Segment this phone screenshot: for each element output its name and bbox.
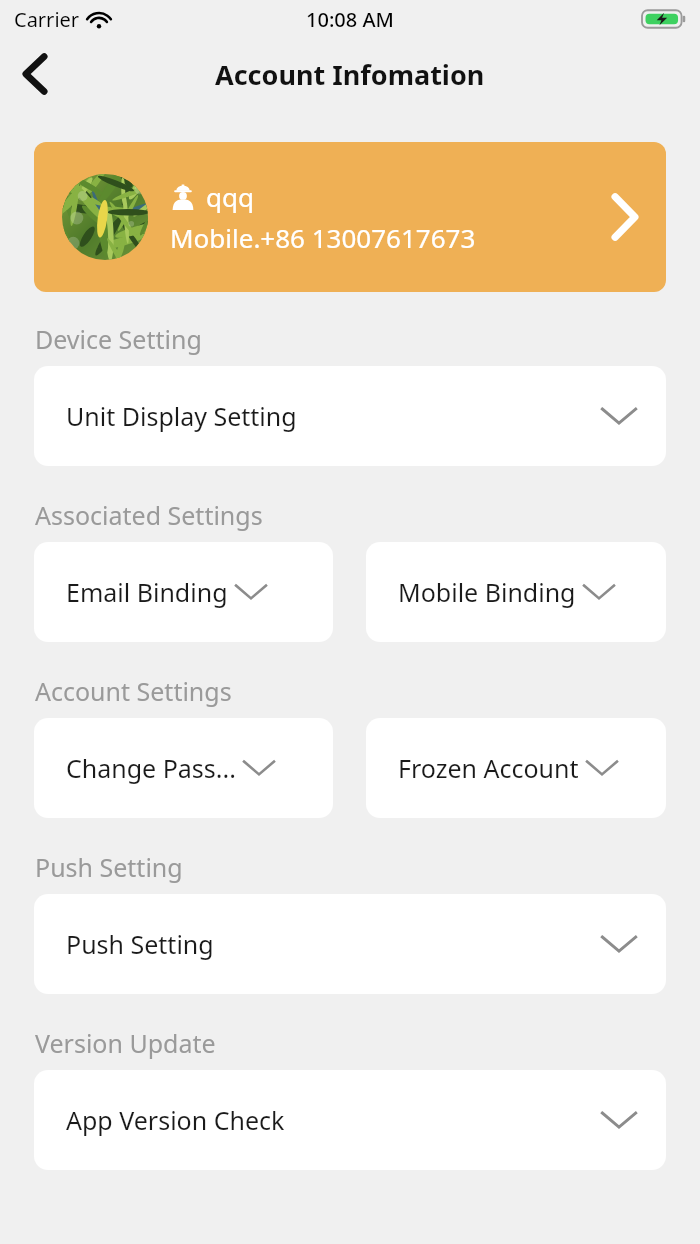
button[interactable]: Mobile Binding xyxy=(366,542,666,642)
staticText: Change Pass... xyxy=(66,751,236,785)
staticText: Device Setting xyxy=(35,322,202,356)
staticText: Account Infomation xyxy=(215,56,485,93)
staticText: App Version Check xyxy=(66,1103,285,1137)
staticText: Frozen Account xyxy=(398,751,579,785)
button[interactable]: qqq xyxy=(34,142,666,292)
staticText: Mobile Binding xyxy=(398,575,576,609)
staticText: Unit Display Setting xyxy=(66,399,297,433)
staticText: Associated Settings xyxy=(35,498,263,532)
button[interactable]: Email Binding xyxy=(34,542,333,642)
staticText: Email Binding xyxy=(66,575,228,609)
staticText: Push Setting xyxy=(35,850,183,884)
button[interactable]: Back xyxy=(8,47,62,101)
staticText: 10:08 AM xyxy=(306,6,394,33)
staticText: Mobile.+86 13007617673 xyxy=(170,220,476,255)
staticText: Version Update xyxy=(35,1026,216,1060)
staticText: Push Setting xyxy=(66,927,214,961)
button[interactable]: Change Pass... xyxy=(34,718,333,818)
button[interactable]: Unit Display Setting xyxy=(34,366,666,466)
staticText: Carrier xyxy=(14,6,80,33)
button[interactable]: Push Setting xyxy=(34,894,666,994)
staticText: qqq xyxy=(206,179,254,214)
staticText: Account Settings xyxy=(35,674,232,708)
button[interactable]: Frozen Account xyxy=(366,718,666,818)
button[interactable]: App Version Check xyxy=(34,1070,666,1170)
